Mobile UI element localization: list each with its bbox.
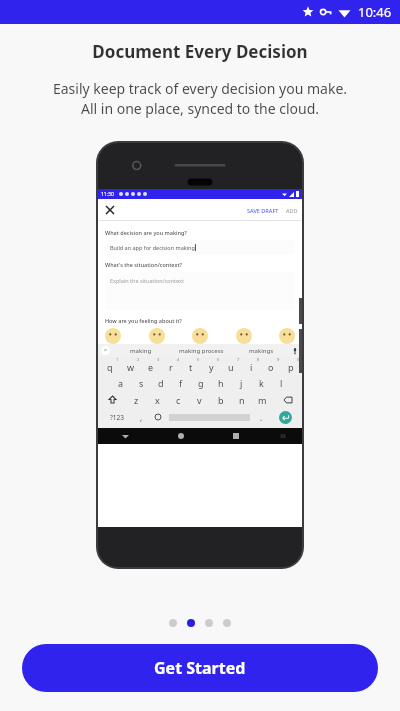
staticText: v (197, 394, 202, 406)
button[interactable]: ADD (286, 207, 298, 214)
staticText: x (155, 394, 160, 406)
button[interactable]: g (191, 374, 211, 391)
staticText: n (239, 394, 245, 406)
button[interactable]: Voice input (291, 347, 299, 355)
button[interactable]: making process (171, 347, 231, 355)
staticText: t (189, 361, 193, 373)
button[interactable]: k (251, 374, 271, 391)
staticText: What's the situation/context? (105, 261, 182, 268)
button[interactable]: 6 (201, 357, 221, 374)
button[interactable]: Backspace (273, 391, 302, 408)
button[interactable]: l (271, 374, 291, 391)
staticText: k (259, 377, 264, 389)
staticText: 7 (237, 357, 240, 362)
button[interactable]: 4 (161, 357, 181, 374)
staticText: h (218, 377, 224, 389)
staticText: j (240, 377, 243, 389)
button[interactable]: 9 (261, 357, 281, 374)
button[interactable]: d (151, 374, 171, 391)
button[interactable]: Home (153, 428, 208, 444)
staticText: m (258, 394, 267, 406)
button[interactable]: x (147, 391, 168, 408)
staticText: What decision are you making? (105, 229, 187, 236)
button[interactable]: Shift (98, 391, 126, 408)
button[interactable]: Recents (208, 428, 263, 444)
button[interactable]: Close (103, 203, 117, 217)
button[interactable]: Emoji (149, 408, 167, 426)
staticText: r (169, 361, 173, 373)
button[interactable]: Hide keyboard (98, 428, 153, 444)
staticText: making process (179, 347, 224, 355)
button[interactable]: 8 (241, 357, 261, 374)
staticText: Easily keep track of every decision you … (0, 79, 400, 119)
button[interactable]: a (110, 374, 131, 391)
staticText: 0 (297, 357, 300, 362)
button[interactable]: f (171, 374, 191, 391)
button[interactable]: makings (231, 347, 291, 355)
staticText: Build an app for decision making (110, 244, 195, 251)
staticText: o (268, 361, 274, 373)
staticText: z (134, 394, 139, 406)
staticText: ?123 (110, 413, 124, 422)
button[interactable]: 7 (221, 357, 241, 374)
staticText: . (260, 412, 263, 423)
staticText: b (218, 394, 224, 406)
staticText: 4 (177, 357, 180, 362)
staticText: , (140, 412, 143, 423)
button[interactable]: b (210, 391, 231, 408)
button[interactable]: , (133, 408, 149, 426)
button[interactable]: . (252, 408, 270, 426)
button[interactable]: making (110, 347, 171, 355)
button[interactable]: n (231, 391, 252, 408)
button[interactable] (192, 328, 208, 344)
button[interactable]: Keyboard switcher (263, 428, 302, 444)
staticText: Explain the situation/context (110, 277, 184, 284)
staticText: Document Every Decision (0, 40, 400, 63)
button[interactable] (105, 328, 121, 344)
staticText: 2 (137, 357, 140, 362)
staticText: w (127, 361, 135, 373)
button[interactable] (149, 328, 165, 344)
button[interactable]: 1 (99, 357, 120, 374)
staticText: making (130, 347, 152, 355)
staticText: p (288, 361, 294, 373)
staticText: 3 (157, 357, 160, 362)
button[interactable]: m (252, 391, 273, 408)
button[interactable]: 2 (120, 357, 141, 374)
button[interactable]: j (231, 374, 251, 391)
button[interactable] (236, 328, 252, 344)
button[interactable]: 0 (281, 357, 301, 374)
staticText: 1 (116, 357, 119, 362)
staticText: 6 (217, 357, 220, 362)
staticText: 10:46 (358, 3, 392, 21)
staticText: a (118, 377, 124, 389)
staticText: Get Started (154, 657, 246, 679)
staticText: 9 (277, 357, 280, 362)
button[interactable]: c (168, 391, 189, 408)
staticText: l (280, 377, 283, 389)
button[interactable]: v (189, 391, 210, 408)
staticText: d (158, 377, 164, 389)
button[interactable]: ?123 (100, 408, 133, 426)
button[interactable]: Enter (279, 411, 292, 424)
staticText: ADD (286, 207, 298, 214)
staticText: e (148, 361, 154, 373)
staticText: 11:30 (101, 191, 114, 198)
button[interactable]: Expand (101, 346, 110, 355)
button[interactable]: h (211, 374, 231, 391)
staticText: q (107, 361, 113, 373)
button[interactable] (279, 328, 295, 344)
staticText: How are you feeling about it? (105, 317, 182, 324)
staticText: SAVE DRAFT (247, 207, 279, 214)
button[interactable]: 5 (181, 357, 201, 374)
button[interactable]: SAVE DRAFT (247, 207, 279, 214)
staticText: f (179, 377, 183, 389)
staticText: > (104, 347, 107, 354)
staticText: u (228, 361, 234, 373)
button[interactable]: s (131, 374, 151, 391)
staticText: g (198, 377, 204, 389)
button[interactable]: Get Started (22, 644, 378, 692)
button[interactable]: 3 (141, 357, 161, 374)
button[interactable]: z (126, 391, 147, 408)
